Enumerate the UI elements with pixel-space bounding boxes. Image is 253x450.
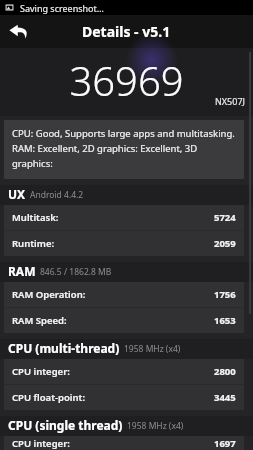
staticText: 1697 bbox=[214, 437, 236, 450]
staticText: 1756 bbox=[214, 288, 236, 301]
staticText: 36969 bbox=[69, 53, 184, 107]
staticText: Multitask: bbox=[12, 211, 59, 224]
button[interactable]: RAM Operation: bbox=[4, 282, 244, 307]
button[interactable]: Runtime: bbox=[4, 231, 244, 256]
staticText: 2059 bbox=[214, 237, 236, 250]
staticText: 2800 bbox=[214, 365, 236, 378]
staticText: 1653 bbox=[214, 314, 236, 327]
button[interactable]: CPU integer: bbox=[4, 436, 244, 450]
staticText: RAM Operation: bbox=[12, 288, 86, 301]
staticText: CPU float-point: bbox=[12, 391, 86, 404]
staticText: 1958 MHz (x4) bbox=[124, 343, 181, 355]
staticText: UX bbox=[8, 186, 26, 202]
staticText: CPU (multi-thread) bbox=[8, 340, 120, 356]
button[interactable]: CPU integer: bbox=[4, 359, 244, 384]
staticText: 846.5 / 1862.8 MB bbox=[40, 266, 112, 278]
staticText: 5724 bbox=[214, 211, 236, 224]
button[interactable]: Multitask: bbox=[4, 205, 244, 230]
staticText: NX507J bbox=[215, 95, 246, 107]
staticText: RAM bbox=[8, 263, 36, 279]
staticText: CPU integer: bbox=[12, 437, 70, 450]
staticText: Saving screenshot… bbox=[20, 2, 104, 14]
staticText: CPU (single thread) bbox=[8, 417, 123, 433]
button[interactable]: CPU float-point: bbox=[4, 385, 244, 410]
staticText: CPU: Good, Supports large apps and multi… bbox=[12, 127, 236, 170]
button[interactable]: Back bbox=[0, 15, 36, 48]
staticText: Android 4.4.2 bbox=[30, 189, 84, 201]
staticText: 3445 bbox=[214, 391, 236, 404]
staticText: Details - v5.1 bbox=[82, 22, 171, 41]
staticText: RAM Speed: bbox=[12, 314, 67, 327]
staticText: 1958 MHz (x4) bbox=[127, 420, 184, 432]
staticText: Runtime: bbox=[12, 237, 55, 250]
staticText: CPU integer: bbox=[12, 365, 70, 378]
button[interactable]: RAM Speed: bbox=[4, 308, 244, 333]
